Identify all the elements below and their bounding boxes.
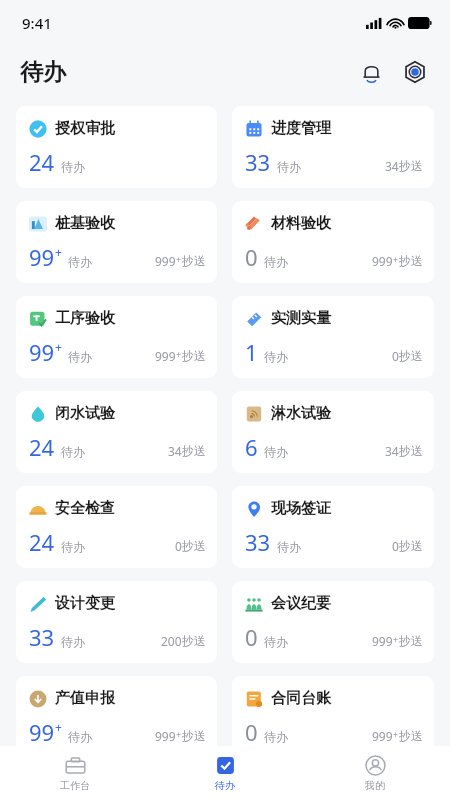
button[interactable]: 闭水试验 — [16, 391, 217, 473]
staticText: 999 — [372, 253, 393, 269]
button[interactable]: 桩基验收 — [16, 201, 217, 283]
staticText: 产值申报 — [55, 689, 115, 708]
staticText: 待办 — [61, 539, 85, 554]
staticText: 待办 — [264, 729, 288, 744]
button[interactable]: 工作台 — [0, 746, 150, 800]
staticText: 抄送 — [182, 538, 206, 553]
staticText: + — [55, 339, 62, 355]
staticText: 现场签证 — [271, 499, 331, 518]
staticText: 待办 — [61, 634, 85, 649]
staticText: 0 — [245, 622, 258, 652]
button[interactable]: 工序验收 — [16, 296, 217, 378]
staticText: 200 — [161, 633, 182, 649]
staticText: 0 — [245, 242, 258, 272]
staticText: 抄送 — [399, 538, 423, 553]
staticText: 抄送 — [399, 348, 423, 363]
staticText: 99 — [29, 717, 55, 747]
staticText: 999 — [155, 348, 176, 364]
staticText: 6 — [245, 432, 258, 462]
staticText: + — [393, 253, 399, 265]
staticText: 9:41 — [22, 13, 52, 33]
button[interactable]: 产值申报 — [16, 676, 217, 758]
staticText: 抄送 — [182, 443, 206, 458]
staticText: 24 — [29, 147, 55, 177]
button[interactable]: Notifications — [352, 53, 390, 91]
button[interactable]: Settings — [396, 53, 434, 91]
staticText: 33 — [245, 147, 271, 177]
staticText: 闭水试验 — [55, 404, 115, 423]
staticText: + — [55, 719, 62, 735]
staticText: 待办 — [264, 349, 288, 364]
button[interactable]: 现场签证 — [232, 486, 434, 568]
staticText: 抄送 — [182, 633, 206, 648]
staticText: 99 — [29, 337, 55, 367]
button[interactable]: 材料验收 — [232, 201, 434, 283]
staticText: 0 — [392, 538, 399, 554]
staticText: 0 — [175, 538, 182, 554]
button[interactable]: 我的 — [300, 746, 450, 800]
staticText: 999 — [155, 728, 176, 744]
staticText: 999 — [372, 728, 393, 744]
staticText: 待办 — [277, 539, 301, 554]
staticText: 淋水试验 — [271, 404, 331, 423]
staticText: + — [176, 253, 182, 265]
staticText: 抄送 — [182, 253, 206, 268]
staticText: 33 — [245, 527, 271, 557]
button[interactable]: 合同台账 — [232, 676, 434, 758]
staticText: 待办 — [68, 254, 92, 269]
staticText: 待办 — [61, 159, 85, 174]
staticText: 24 — [29, 527, 55, 557]
staticText: 安全检查 — [55, 499, 115, 518]
button[interactable]: 实测实量 — [232, 296, 434, 378]
staticText: 99 — [29, 242, 55, 272]
staticText: 1 — [245, 337, 258, 367]
staticText: 待办 — [215, 779, 235, 792]
staticText: 合同台账 — [271, 689, 331, 708]
staticText: 桩基验收 — [55, 214, 115, 233]
staticText: 抄送 — [399, 728, 423, 743]
staticText: 抄送 — [182, 728, 206, 743]
button[interactable]: 进度管理 — [232, 106, 434, 188]
staticText: 999 — [372, 633, 393, 649]
staticText: + — [176, 728, 182, 740]
staticText: 材料验收 — [271, 214, 331, 233]
staticText: 我的 — [365, 779, 385, 792]
button[interactable]: 待办 — [150, 746, 300, 800]
staticText: 待办 — [20, 58, 66, 87]
button[interactable]: 授权审批 — [16, 106, 217, 188]
staticText: 34 — [168, 443, 182, 459]
staticText: 设计变更 — [55, 594, 115, 613]
staticText: 实测实量 — [271, 309, 331, 328]
staticText: 会议纪要 — [271, 594, 331, 613]
staticText: 抄送 — [399, 633, 423, 648]
staticText: 24 — [29, 432, 55, 462]
staticText: 34 — [385, 443, 399, 459]
staticText: 待办 — [264, 444, 288, 459]
staticText: + — [176, 348, 182, 360]
staticText: 999 — [155, 253, 176, 269]
staticText: 0 — [392, 348, 399, 364]
staticText: 33 — [29, 622, 55, 652]
staticText: 待办 — [264, 634, 288, 649]
staticText: 抄送 — [182, 348, 206, 363]
button[interactable]: 安全检查 — [16, 486, 217, 568]
staticText: 待办 — [264, 254, 288, 269]
staticText: 待办 — [68, 729, 92, 744]
staticText: 工序验收 — [55, 309, 115, 328]
staticText: 进度管理 — [271, 119, 331, 138]
staticText: 授权审批 — [55, 119, 115, 138]
staticText: 工作台 — [60, 779, 90, 792]
staticText: 待办 — [68, 349, 92, 364]
staticText: 待办 — [277, 159, 301, 174]
staticText: + — [393, 728, 399, 740]
staticText: 34 — [385, 158, 399, 174]
button[interactable]: 设计变更 — [16, 581, 217, 663]
staticText: + — [393, 633, 399, 645]
staticText: 抄送 — [399, 158, 423, 173]
button[interactable]: 淋水试验 — [232, 391, 434, 473]
staticText: 抄送 — [399, 443, 423, 458]
button[interactable]: 会议纪要 — [232, 581, 434, 663]
staticText: 0 — [245, 717, 258, 747]
staticText: + — [55, 244, 62, 260]
staticText: 待办 — [61, 444, 85, 459]
